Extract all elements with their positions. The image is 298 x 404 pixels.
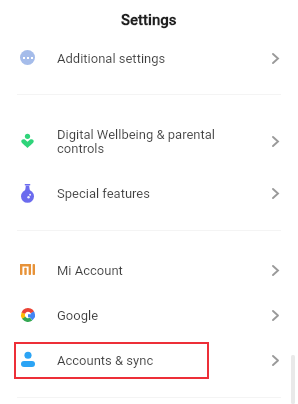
button[interactable]: Google — [0, 293, 298, 338]
staticText: Additional settings — [57, 51, 225, 66]
staticText: Special features — [57, 186, 225, 201]
button[interactable]: Special features — [0, 171, 298, 216]
staticText: Accounts & sync — [57, 353, 225, 368]
button[interactable]: Additional settings — [0, 36, 298, 81]
staticText: Digital Wellbeing & parental controls — [57, 127, 225, 157]
staticText: Google — [57, 308, 225, 323]
staticText: Mi Account — [57, 263, 225, 278]
staticText: Settings — [121, 11, 177, 29]
button[interactable]: Accounts & sync — [0, 338, 298, 383]
button[interactable]: Digital Wellbeing & parental controls — [0, 112, 298, 171]
button[interactable]: Mi Account — [0, 248, 298, 293]
